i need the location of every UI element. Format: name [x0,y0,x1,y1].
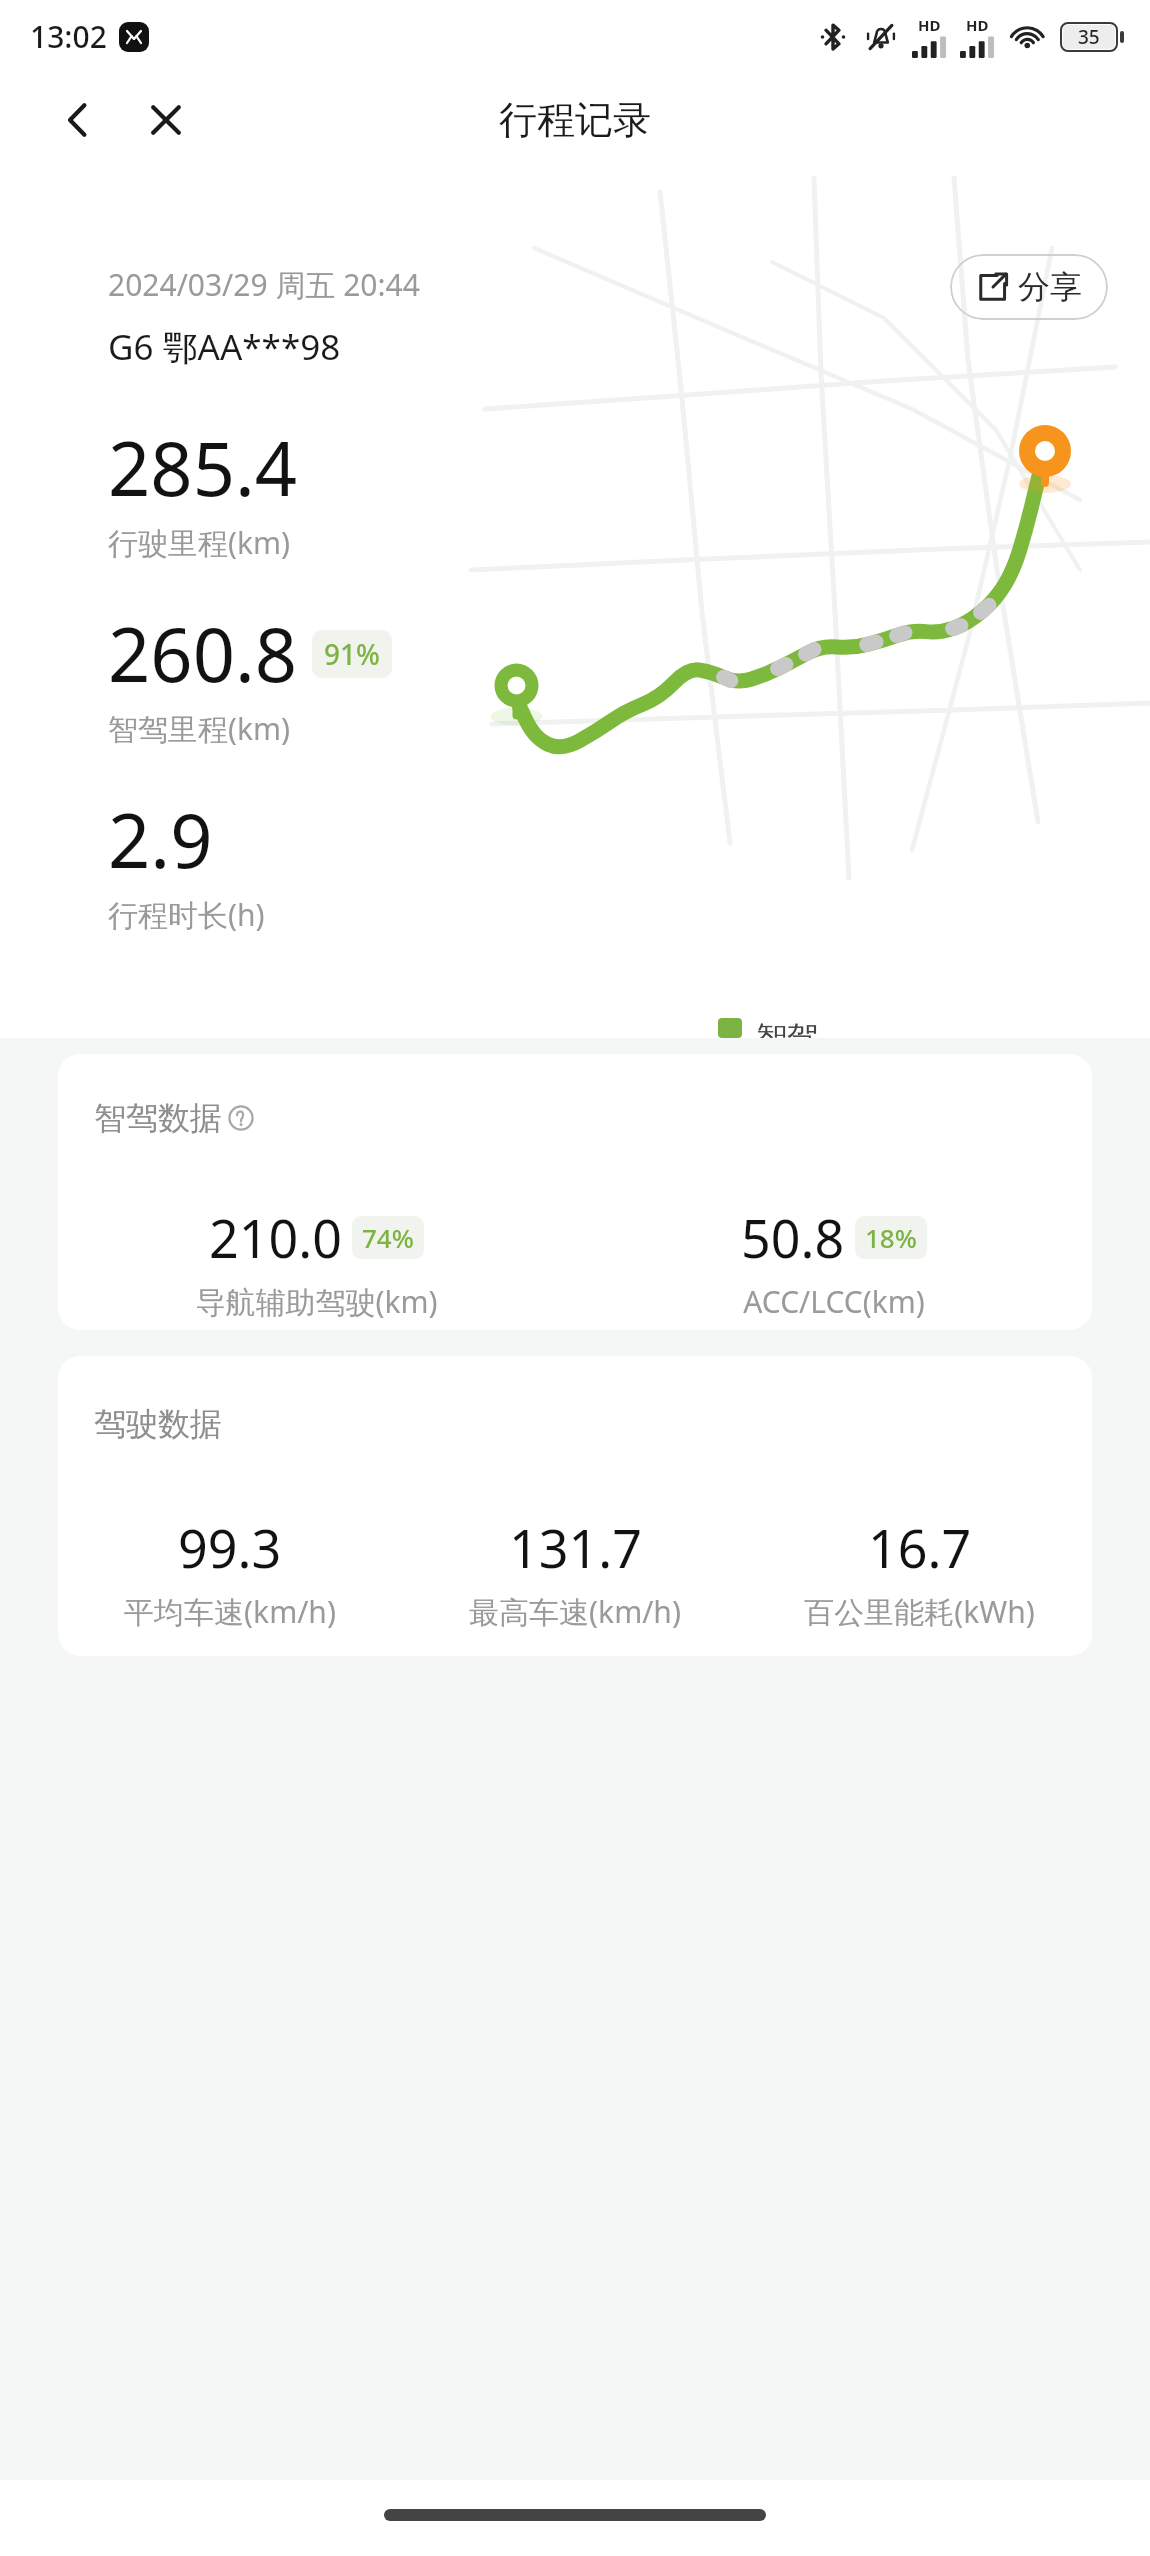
staticText: 18% [865,1220,917,1255]
staticText: 131.7 [509,1512,642,1583]
staticText: ACC/LCC(km) [743,1281,925,1322]
staticText: 91% [324,635,380,673]
staticText: 99.3 [178,1512,282,1583]
staticText: 2.9 [108,789,213,890]
button[interactable]: 分享 [950,254,1108,320]
button[interactable]: Close [128,82,204,158]
staticText: 16.7 [868,1512,972,1583]
staticText: HD [918,15,941,35]
staticText: 74% [362,1220,414,1255]
staticText: 行程记录 [499,96,651,144]
staticText: 50.8 [741,1202,845,1273]
staticText: G6 鄂AA***98 [108,323,341,371]
staticText: 平均车速(km/h) [124,1591,336,1632]
staticText: 2024/03/29 周五 20:44 [108,264,420,305]
staticText: 百公里能耗(kWh) [804,1591,1035,1632]
staticText: 210.0 [209,1202,342,1273]
button[interactable]: 智驾数据 [58,1054,1092,1330]
staticText: 智驾数据 [94,1098,222,1138]
staticText: 驾驶数据 [94,1404,222,1444]
staticText: 导航辅助驾驶(km) [195,1281,438,1322]
staticText: 35 [1078,24,1100,50]
staticText: 260.8 [108,603,298,704]
staticText: 行程时长(h) [108,894,265,935]
button[interactable]: Back [40,82,116,158]
staticText: 285.4 [108,417,298,518]
staticText: 智驾 [756,1018,818,1038]
staticText: 行驶里程(km) [108,522,291,563]
staticText: 13:02 [30,16,107,57]
staticText: 分享 [1018,267,1082,307]
staticText: HD [966,15,989,35]
staticText: 最高车速(km/h) [469,1591,681,1632]
button[interactable]: 驾驶数据 [58,1356,1092,1656]
staticText: 智驾里程(km) [108,708,291,749]
